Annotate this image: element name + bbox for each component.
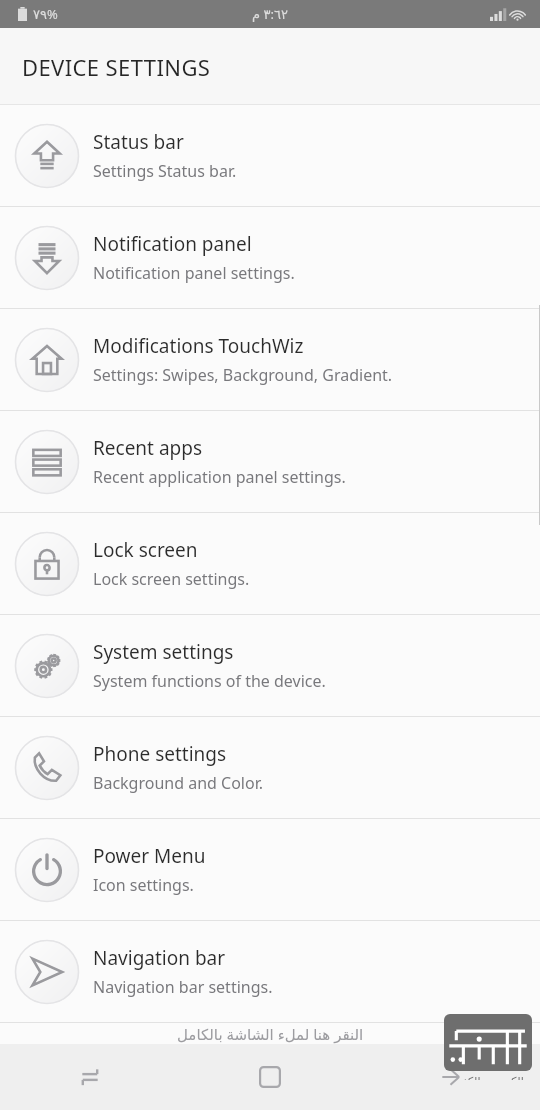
staticText: Lock screen bbox=[93, 537, 198, 563]
staticText: Background and Color. bbox=[93, 772, 263, 794]
staticText: النقر هنا لملء الشاشة بالكامل bbox=[177, 1024, 364, 1044]
button[interactable]: Recent apps bbox=[0, 411, 540, 512]
staticText: Icon settings. bbox=[93, 874, 194, 896]
button[interactable]: Recent apps bbox=[0, 1044, 180, 1110]
button[interactable]: Home bbox=[180, 1044, 360, 1110]
staticText: Lock screen settings. bbox=[93, 568, 250, 590]
button[interactable]: Navigation bar bbox=[0, 921, 540, 1022]
staticText: Modifications TouchWiz bbox=[93, 333, 304, 359]
staticText: Power Menu bbox=[93, 843, 206, 869]
staticText: System functions of the device. bbox=[93, 670, 326, 692]
staticText: Notification panel settings. bbox=[93, 262, 295, 284]
staticText: Phone settings bbox=[93, 741, 227, 767]
staticText: Navigation bar bbox=[93, 945, 226, 971]
staticText: ٧٩% bbox=[33, 5, 58, 23]
button[interactable]: System settings bbox=[0, 615, 540, 716]
staticText: الكمبيوتر الكفي bbox=[453, 1073, 524, 1080]
button[interactable]: Power Menu bbox=[0, 819, 540, 920]
button[interactable]: Status bar bbox=[0, 105, 540, 206]
staticText: System settings bbox=[93, 639, 234, 665]
staticText: Settings Status bar. bbox=[93, 160, 237, 182]
staticText: Recent application panel settings. bbox=[93, 466, 346, 488]
button[interactable]: Notification panel bbox=[0, 207, 540, 308]
button[interactable]: Phone settings bbox=[0, 717, 540, 818]
staticText: ٣:٦٢ م bbox=[252, 5, 288, 23]
staticText: Settings: Swipes, Background, Gradient. bbox=[93, 364, 393, 386]
staticText: Navigation bar settings. bbox=[93, 976, 273, 998]
button[interactable]: Back bbox=[360, 1044, 540, 1110]
button[interactable]: Lock screen bbox=[0, 513, 540, 614]
button[interactable]: Modifications TouchWiz bbox=[0, 309, 540, 410]
staticText: DEVICE SETTINGS bbox=[22, 52, 211, 82]
staticText: Notification panel bbox=[93, 231, 252, 257]
staticText: Status bar bbox=[93, 129, 184, 155]
staticText: Recent apps bbox=[93, 435, 203, 461]
